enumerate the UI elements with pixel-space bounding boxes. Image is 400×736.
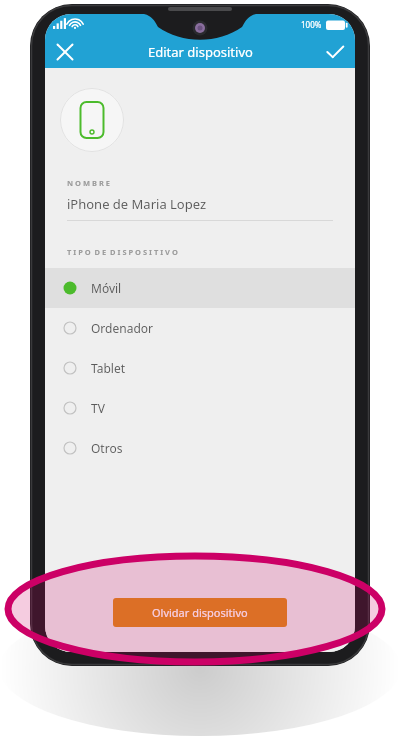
staticText: iPhone de Maria Lopez: [67, 195, 207, 213]
button[interactable]: Guardar: [319, 36, 351, 68]
staticText: N O M B R E: [67, 178, 110, 188]
staticText: Olvidar dispositivo: [152, 605, 248, 620]
staticText: Tablet: [91, 360, 126, 376]
button[interactable]: Otros: [45, 428, 355, 468]
staticText: T I P O D E D I S P O S I T I V O: [67, 247, 178, 257]
button[interactable]: Olvidar dispositivo: [113, 598, 287, 627]
button[interactable]: Tablet: [45, 348, 355, 388]
staticText: TV: [91, 400, 105, 416]
staticText: 100%: [301, 19, 322, 30]
staticText: Móvil: [91, 280, 122, 296]
button[interactable]: Ordenador: [45, 308, 355, 348]
button[interactable]: Móvil: [45, 268, 355, 308]
staticText: Otros: [91, 440, 123, 456]
staticText: Editar dispositivo: [148, 43, 253, 61]
button[interactable]: iPhone de Maria Lopez: [67, 195, 333, 221]
button[interactable]: Cerrar: [49, 36, 81, 68]
staticText: Ordenador: [91, 320, 153, 336]
button[interactable]: TV: [45, 388, 355, 428]
